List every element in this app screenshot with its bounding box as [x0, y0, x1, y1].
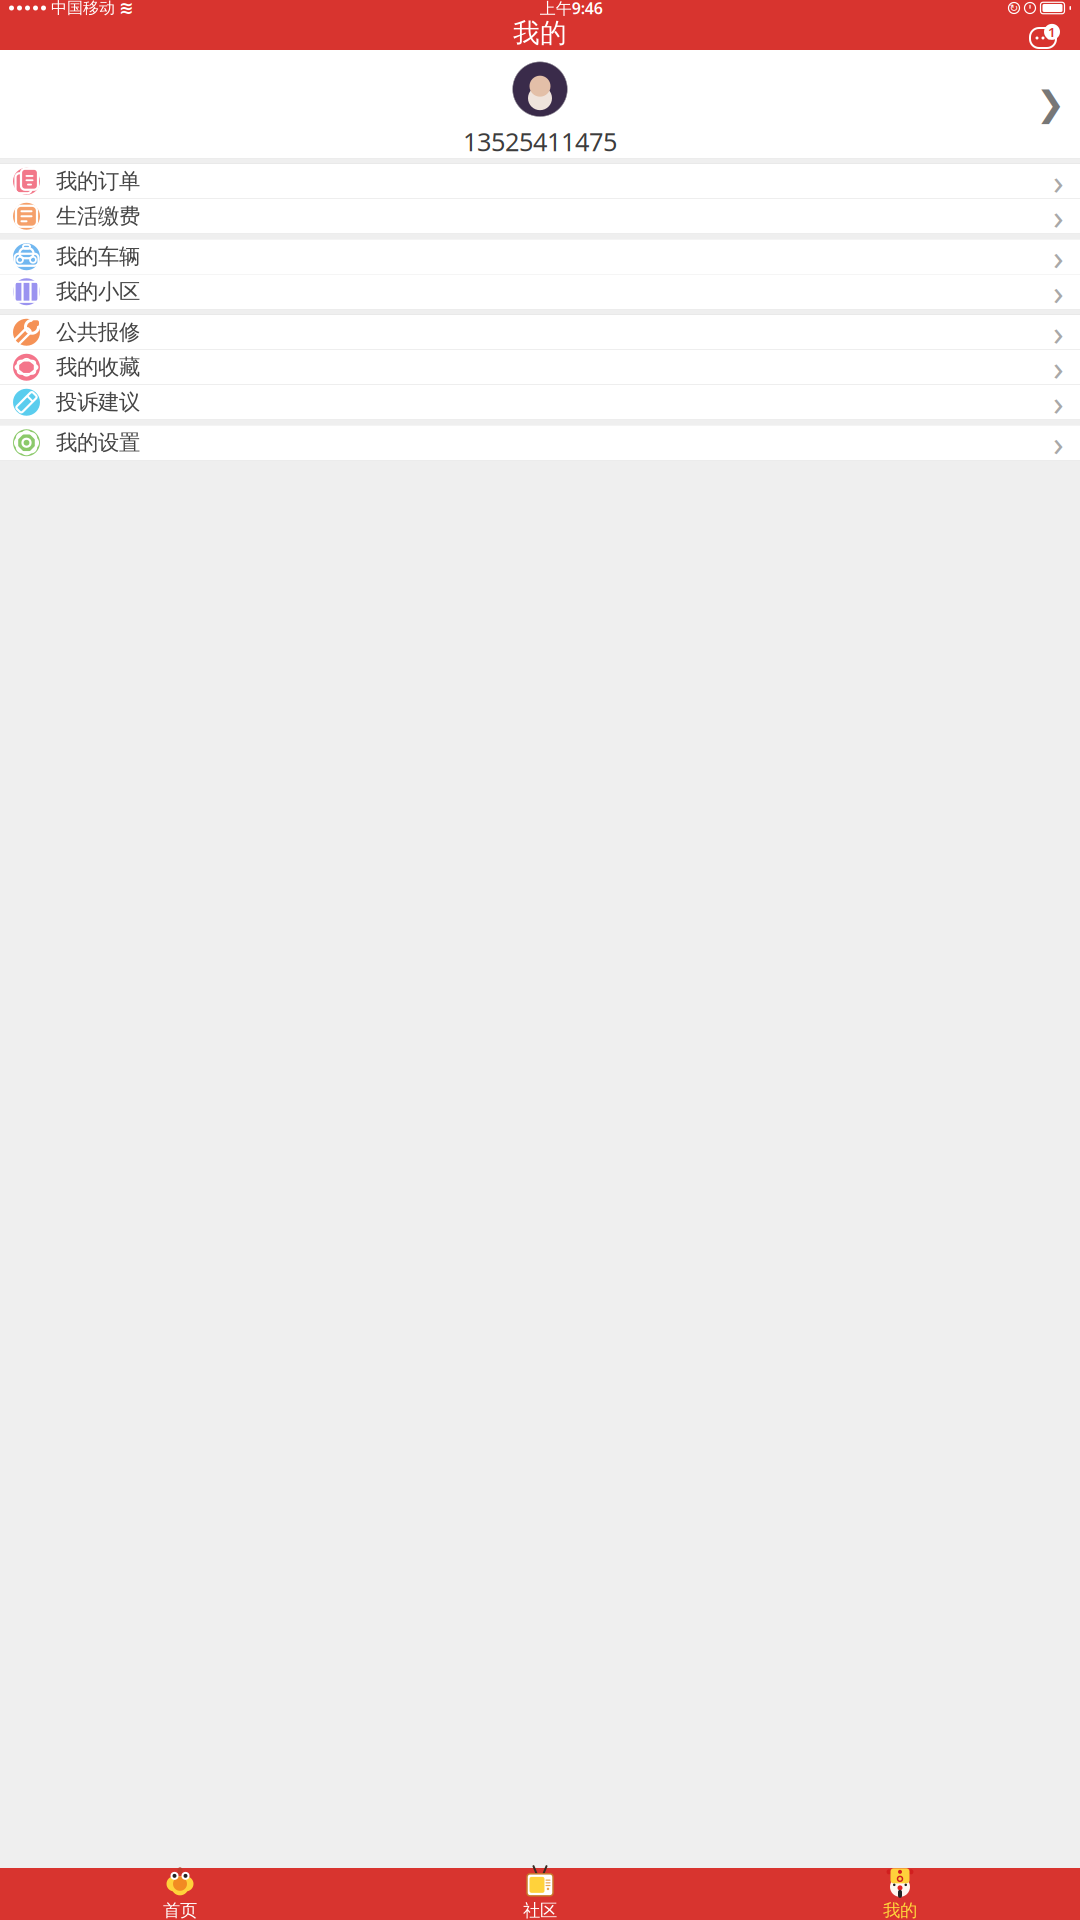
staticText: 我的订单 — [56, 168, 140, 194]
staticText: 我的 — [883, 1900, 917, 1920]
button[interactable]: 公共报修 — [0, 315, 1080, 350]
button[interactable]: 我的订单 — [0, 164, 1080, 199]
button[interactable]: 投诉建议 — [0, 385, 1080, 419]
staticText: 我的设置 — [56, 430, 140, 456]
staticText: 上午9:46 — [540, 0, 603, 19]
button[interactable]: 社区 — [360, 1868, 720, 1920]
staticText: 中国移动 — [51, 0, 115, 18]
staticText: 公共报修 — [56, 319, 140, 345]
staticText: 投诉建议 — [56, 389, 140, 415]
staticText: 我的小区 — [56, 279, 140, 305]
staticText: › — [1053, 309, 1064, 355]
staticText: 13525411475 — [463, 125, 617, 158]
staticText: 我的收藏 — [56, 354, 140, 380]
staticText: › — [1053, 420, 1064, 466]
button[interactable]: 我的设置 — [0, 425, 1080, 460]
staticText: › — [1053, 379, 1064, 425]
staticText: 首页 — [163, 1900, 197, 1920]
button[interactable]: 我的车辆 — [0, 239, 1080, 274]
staticText: 社区 — [523, 1900, 557, 1920]
staticText: › — [1053, 344, 1064, 390]
staticText: › — [1053, 193, 1064, 239]
staticText: 我的 — [513, 17, 567, 49]
staticText: ≋ — [119, 0, 134, 18]
button[interactable]: 13525411475 — [0, 50, 1080, 158]
button[interactable]: 我的收藏 — [0, 350, 1080, 385]
button[interactable]: 我的小区 — [0, 274, 1080, 309]
button[interactable]: 首页 — [0, 1868, 360, 1920]
staticText: › — [1053, 234, 1064, 280]
staticText: 我的车辆 — [56, 244, 140, 270]
staticText: 1 — [1048, 23, 1056, 41]
staticText: 生活缴费 — [56, 203, 140, 229]
staticText: › — [1053, 158, 1064, 204]
button[interactable]: Messages — [1028, 16, 1080, 50]
staticText: ❯ — [1036, 84, 1065, 124]
button[interactable]: 生活缴费 — [0, 199, 1080, 233]
staticText: ↻ — [1009, 2, 1018, 14]
staticText: › — [1053, 269, 1064, 315]
button[interactable]: 我的 — [720, 1868, 1080, 1920]
